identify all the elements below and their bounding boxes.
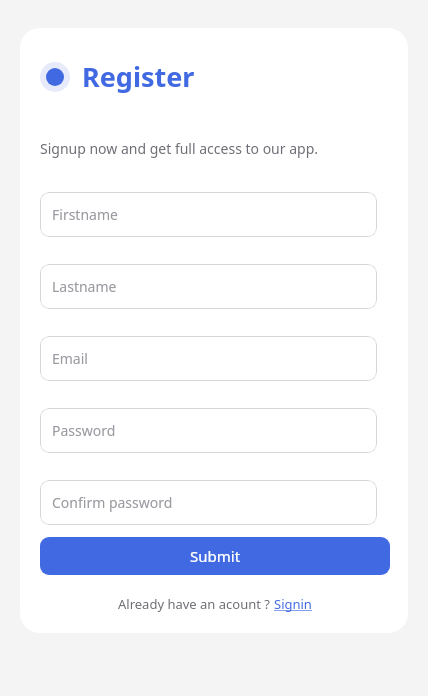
button[interactable]: Signin [274, 595, 312, 613]
staticText: Register [82, 58, 195, 95]
staticText: Signin [274, 595, 312, 613]
staticText: Submit [190, 546, 241, 566]
staticText: Confirm password [52, 493, 173, 512]
staticText: Password [52, 421, 116, 440]
staticText: Already have an acount ? [118, 595, 274, 613]
staticText: Signup now and get full access to our ap… [40, 139, 319, 158]
button[interactable]: Confirm password [40, 480, 377, 525]
other: Register [40, 62, 70, 92]
button[interactable]: Submit [40, 537, 390, 575]
button[interactable]: Email [40, 336, 377, 381]
staticText: Lastname [52, 277, 117, 296]
button[interactable]: Lastname [40, 264, 377, 309]
button[interactable]: Password [40, 408, 377, 453]
button[interactable]: Firstname [40, 192, 377, 237]
staticText: Email [52, 349, 88, 368]
staticText: Firstname [52, 205, 118, 224]
